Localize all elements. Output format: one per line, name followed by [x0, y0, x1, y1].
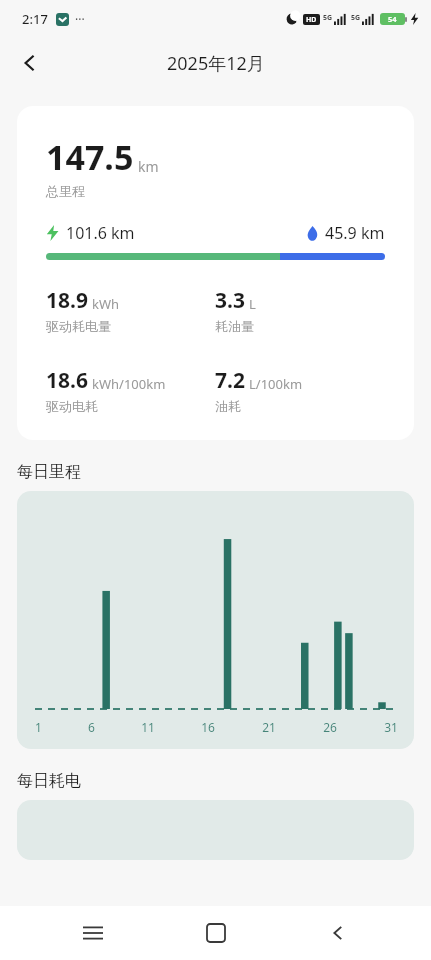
- staticText: 6: [88, 719, 95, 735]
- staticText: 7.2: [215, 366, 245, 395]
- staticText: L/100km: [249, 375, 303, 393]
- staticText: 每日里程: [17, 462, 81, 482]
- staticText: L: [249, 295, 256, 313]
- staticText: 54: [388, 14, 397, 24]
- button[interactable]: 147.5: [17, 106, 414, 440]
- staticText: 2025年12月: [167, 51, 265, 76]
- staticText: 总里程: [46, 183, 85, 199]
- staticText: 驱动耗电量: [46, 318, 111, 334]
- button[interactable]: Recent apps: [63, 906, 123, 960]
- staticText: km: [138, 157, 159, 176]
- staticText: 45.9 km: [325, 222, 385, 244]
- staticText: 3.3: [215, 286, 245, 315]
- staticText: 26: [323, 719, 337, 735]
- staticText: 5G: [351, 13, 361, 23]
- staticText: kWh: [92, 295, 120, 313]
- staticText: 11: [141, 719, 155, 735]
- staticText: 5G: [323, 13, 333, 23]
- staticText: ···: [75, 11, 85, 27]
- staticText: 耗油量: [215, 318, 254, 334]
- staticText: 21: [262, 719, 276, 735]
- staticText: 油耗: [215, 398, 241, 414]
- staticText: 每日耗电: [17, 771, 81, 791]
- staticText: 1: [35, 719, 42, 735]
- staticText: 147.5: [46, 134, 134, 180]
- staticText: 18.9: [46, 286, 88, 315]
- staticText: 2:17: [22, 10, 48, 28]
- staticText: kWh/100km: [92, 375, 166, 393]
- staticText: 16: [201, 719, 215, 735]
- staticText: 101.6 km: [66, 222, 135, 244]
- staticText: HD: [306, 15, 317, 25]
- staticText: 驱动电耗: [46, 398, 98, 414]
- button[interactable]: Back: [308, 906, 368, 960]
- staticText: 18.6: [46, 366, 88, 395]
- button[interactable]: 1: [17, 491, 414, 749]
- staticText: 31: [384, 719, 398, 735]
- button[interactable]: Home: [186, 906, 246, 960]
- button[interactable]: Back: [8, 41, 52, 85]
